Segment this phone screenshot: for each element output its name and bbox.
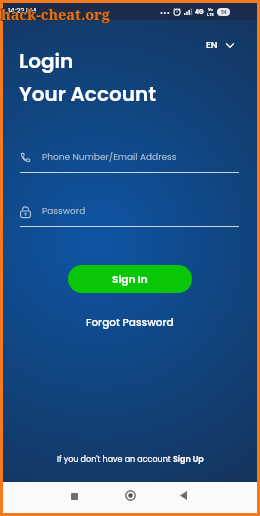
- staticText: If you don't have an account: [57, 454, 173, 465]
- staticText: EN: [206, 39, 218, 52]
- staticText: Sign In: [112, 272, 148, 287]
- staticText: hack-cheat.org: [1, 5, 110, 25]
- staticText: 14:22 PM: [8, 6, 37, 16]
- staticText: Phone Number/Email Address: [42, 151, 177, 164]
- staticText: Password: [42, 205, 86, 218]
- staticText: 4G: [195, 8, 204, 16]
- staticText: 54: [221, 9, 227, 16]
- staticText: Login: [19, 47, 74, 75]
- staticText: hack-cheat.org: [1, 4, 110, 24]
- button[interactable]: Forgot Password: [86, 315, 174, 330]
- button[interactable]: [176, 488, 191, 503]
- staticText: Your Account: [19, 80, 156, 108]
- staticText: hack-cheat.org: [1, 3, 110, 23]
- staticText: LTE: [207, 12, 214, 17]
- staticText: hack-cheat.org: [0, 4, 109, 24]
- button[interactable]: Sign In: [68, 265, 192, 293]
- button[interactable]: If you don't have an account: [57, 454, 204, 465]
- button[interactable]: Password: [20, 205, 239, 218]
- staticText: hack-cheat.org: [2, 4, 111, 24]
- staticText: Sign Up: [173, 454, 204, 465]
- button[interactable]: EN: [206, 39, 234, 52]
- button[interactable]: [67, 489, 82, 504]
- button[interactable]: [122, 487, 139, 504]
- button[interactable]: Phone Number/Email Address: [20, 151, 239, 164]
- staticText: Vo: [208, 7, 214, 12]
